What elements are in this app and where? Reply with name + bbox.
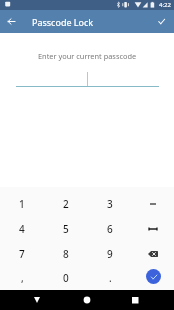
staticText: Passcode Lock bbox=[32, 16, 94, 28]
staticText: 2 bbox=[63, 197, 69, 211]
staticText: . bbox=[109, 271, 112, 285]
button[interactable]: 2 bbox=[44, 191, 88, 216]
button[interactable]: . bbox=[88, 266, 132, 290]
staticText: 1 bbox=[19, 197, 25, 211]
button[interactable]: Back bbox=[4, 14, 19, 29]
button[interactable]: 7 bbox=[0, 241, 44, 266]
button[interactable]: 4 bbox=[0, 216, 44, 241]
button[interactable]: 5 bbox=[44, 216, 88, 241]
button[interactable]: Enter bbox=[132, 266, 174, 290]
staticText: 7 bbox=[19, 247, 25, 261]
staticText: 9 bbox=[107, 247, 113, 261]
staticText: 5 bbox=[63, 222, 69, 236]
button[interactable]: 8 bbox=[44, 241, 88, 266]
staticText: 4 bbox=[19, 222, 25, 236]
staticText: Enter your current passcode bbox=[38, 51, 137, 61]
staticText: 3 bbox=[107, 197, 113, 211]
button[interactable]: 6 bbox=[88, 216, 132, 241]
staticText: 4:22 bbox=[159, 1, 171, 9]
button[interactable]: 9 bbox=[88, 241, 132, 266]
staticText: 8 bbox=[63, 247, 69, 261]
button[interactable]: Confirm bbox=[154, 14, 169, 29]
button[interactable]: 3 bbox=[88, 191, 132, 216]
button[interactable]: , bbox=[0, 266, 44, 290]
other: Enter bbox=[146, 269, 161, 284]
button[interactable] bbox=[132, 191, 174, 216]
button[interactable]: Backspace bbox=[132, 241, 174, 266]
button[interactable] bbox=[132, 216, 174, 241]
staticText: , bbox=[21, 271, 24, 285]
button[interactable]: 1 bbox=[0, 191, 44, 216]
button[interactable]: 0 bbox=[44, 266, 88, 290]
other: Backspace bbox=[148, 251, 158, 257]
staticText: 0 bbox=[63, 271, 69, 285]
staticText: 6 bbox=[107, 222, 113, 236]
